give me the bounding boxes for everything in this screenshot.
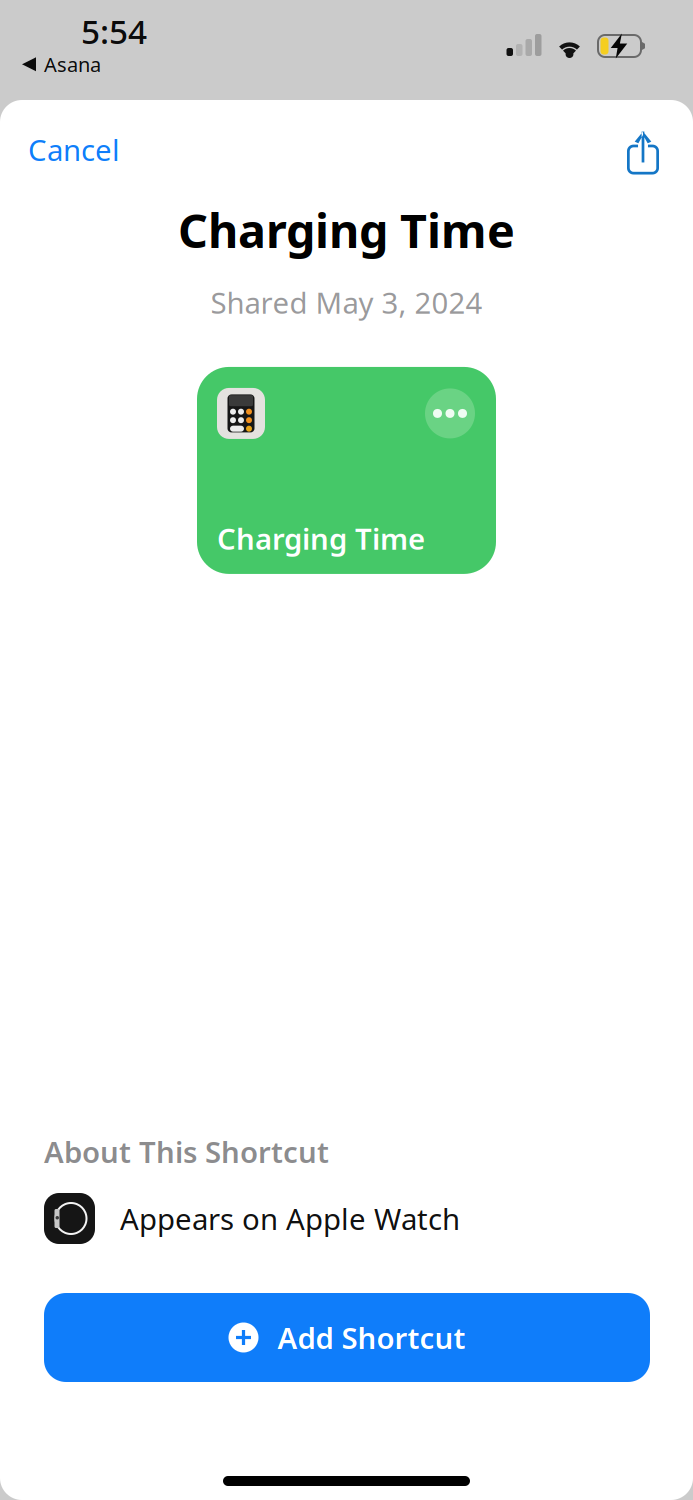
button[interactable]: Share — [603, 112, 693, 186]
staticText: Cancel — [28, 130, 120, 169]
button[interactable]: Add Shortcut — [44, 1293, 650, 1382]
button[interactable]: Asana — [22, 51, 101, 78]
staticText: Add Shortcut — [277, 1318, 465, 1357]
staticText: 5:54 — [81, 9, 147, 53]
staticText: Asana — [44, 51, 101, 78]
button[interactable]: Charging Time — [197, 367, 496, 574]
staticText: Charging Time — [178, 199, 515, 261]
staticText: About This Shortcut — [44, 1132, 329, 1171]
button[interactable]: Cancel — [0, 112, 146, 187]
staticText: Charging Time — [217, 519, 425, 558]
staticText: Appears on Apple Watch — [120, 1199, 460, 1238]
staticText: Shared May 3, 2024 — [210, 283, 482, 322]
